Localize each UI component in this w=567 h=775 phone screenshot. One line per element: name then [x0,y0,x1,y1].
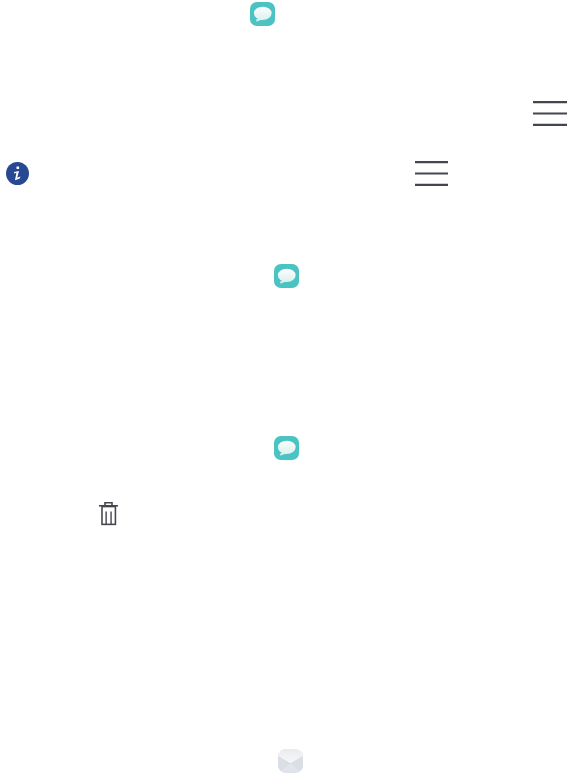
button[interactable]: Messages [250,2,275,26]
button[interactable]: Menu [533,101,567,126]
button[interactable]: Information [6,162,29,185]
button[interactable]: Messages [274,264,299,288]
button[interactable]: Delete [99,501,118,525]
button[interactable]: Messages [274,436,299,460]
button[interactable]: Menu [415,161,448,186]
button[interactable]: Mail [278,749,303,773]
